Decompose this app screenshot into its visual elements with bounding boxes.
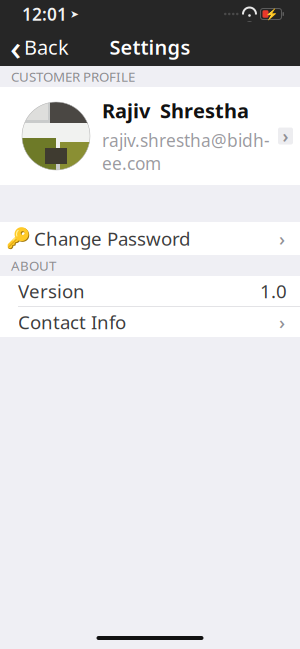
staticText: ›	[279, 310, 285, 334]
button[interactable]: ‹	[0, 28, 79, 66]
staticText: Back	[24, 34, 69, 60]
staticText: ›	[282, 124, 288, 147]
staticText: rajiv.shrestha@bidhee.com	[102, 129, 270, 175]
staticText: ›	[279, 226, 285, 251]
staticText: ⚡	[264, 8, 277, 20]
button[interactable]: Contact Info	[0, 307, 300, 337]
staticText: ➤	[70, 8, 79, 20]
staticText: Rajiv Shrestha	[102, 97, 249, 124]
staticText: 1.0	[260, 279, 287, 303]
button[interactable]: 🔑	[0, 222, 300, 255]
staticText: 12:01	[22, 2, 67, 25]
staticText: ABOUT	[11, 257, 56, 274]
staticText: CUSTOMER PROFILE	[11, 68, 135, 85]
staticText: 🔑	[5, 227, 30, 250]
staticText: Contact Info	[18, 310, 126, 334]
button[interactable]: Rajiv Shrestha	[0, 87, 300, 185]
staticText: Version	[18, 279, 85, 303]
staticText: ‹	[10, 24, 21, 70]
staticText: Change Password	[34, 226, 190, 251]
staticText: Settings	[109, 34, 190, 60]
